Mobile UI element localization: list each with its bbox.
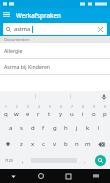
staticText: h (64, 124, 68, 132)
button[interactable]: Allergie (0, 43, 110, 58)
staticText: v (53, 140, 57, 148)
staticText: m (85, 140, 91, 148)
staticText: . (84, 157, 86, 164)
staticText: Allergie (4, 47, 23, 54)
staticText: 3 (27, 105, 29, 109)
staticText: astma (14, 25, 31, 33)
button[interactable]: f (38, 120, 49, 136)
button[interactable]: Open navigation menu (0, 8, 13, 21)
button[interactable]: 1 (0, 103, 11, 120)
button[interactable]: 8 (77, 103, 88, 120)
button[interactable]: 7 (66, 103, 77, 120)
button[interactable]: Voice input (98, 91, 110, 102)
button[interactable]: 2 (11, 103, 22, 120)
staticText: 4 (38, 105, 40, 109)
staticText: e (26, 110, 30, 118)
staticText: Werkafspraken (16, 11, 61, 19)
button[interactable]: Clear search (95, 24, 106, 35)
button[interactable]: x (27, 136, 38, 152)
staticText: ?123 (5, 158, 13, 163)
staticText: x (31, 140, 35, 148)
button[interactable]: ?123 (0, 152, 17, 168)
staticText: j (76, 124, 78, 132)
button[interactable]: k (82, 120, 93, 136)
button[interactable]: . (79, 152, 90, 168)
staticText: d (31, 124, 35, 132)
staticText: l (98, 124, 100, 132)
staticText: k (86, 124, 90, 132)
button[interactable]: j (71, 120, 82, 136)
button[interactable]: b (60, 136, 71, 152)
button[interactable]: d (27, 120, 38, 136)
staticText: 7 (71, 105, 73, 109)
staticText: 6 (60, 105, 62, 109)
button[interactable]: 3 (22, 103, 33, 120)
staticText: y (59, 110, 63, 118)
button[interactable]: , (17, 152, 28, 168)
button[interactable]: h (60, 120, 71, 136)
button[interactable]: Space (28, 152, 79, 168)
staticText: 5 (49, 105, 51, 109)
staticText: , (22, 157, 24, 164)
staticText: Astma bij Kinderen (4, 63, 51, 70)
staticText: 2 (16, 105, 18, 109)
button[interactable]: Back (0, 169, 27, 183)
staticText: r (37, 110, 40, 118)
staticText: o (92, 110, 96, 118)
staticText: g (53, 124, 57, 132)
button[interactable]: Astma bij Kinderen (0, 59, 110, 74)
button[interactable]: Search (90, 152, 110, 168)
button[interactable]: g (49, 120, 60, 136)
staticText: 1 (5, 105, 7, 109)
button[interactable]: z (16, 136, 27, 152)
staticText: c (42, 140, 45, 148)
staticText: w (14, 110, 19, 118)
button[interactable]: a (5, 120, 16, 136)
button[interactable]: c (38, 136, 49, 152)
button[interactable]: 6 (55, 103, 66, 120)
button[interactable]: Recent apps (54, 169, 82, 183)
staticText: q (4, 110, 8, 118)
button[interactable]: v (49, 136, 60, 152)
button[interactable]: 4 (33, 103, 44, 120)
staticText: 8 (82, 105, 84, 109)
staticText: s (20, 124, 23, 132)
button[interactable]: n (71, 136, 82, 152)
button[interactable]: 0 (99, 103, 110, 120)
button[interactable]: astma (3, 23, 107, 35)
button[interactable]: Shift (0, 136, 16, 152)
button[interactable]: s (16, 120, 27, 136)
button[interactable]: Home (27, 169, 54, 183)
button[interactable]: l (93, 120, 104, 136)
button[interactable]: Hide keyboard (82, 169, 110, 183)
staticText: t (48, 110, 51, 118)
staticText: 9 (93, 105, 95, 109)
staticText: b (64, 140, 68, 148)
staticText: a (9, 124, 13, 132)
staticText: Documenten (4, 37, 30, 43)
button[interactable]: 9 (88, 103, 99, 120)
staticText: 0 (104, 105, 106, 109)
button[interactable]: Backspace (93, 136, 110, 152)
button[interactable]: 5 (44, 103, 55, 120)
staticText: z (20, 140, 23, 148)
button[interactable]: m (82, 136, 93, 152)
staticText: i (82, 110, 84, 118)
staticText: n (75, 140, 79, 148)
staticText: f (42, 124, 45, 132)
staticText: p (103, 110, 107, 118)
staticText: u (70, 110, 74, 118)
